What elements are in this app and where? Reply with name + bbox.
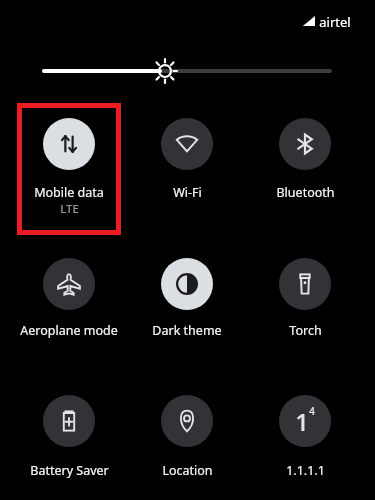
staticText: Location — [162, 462, 213, 479]
other: Wi-Fi — [161, 118, 213, 170]
other: Torch — [279, 258, 331, 310]
staticText: Torch — [289, 322, 322, 339]
staticText: Aeroplane mode — [20, 322, 118, 339]
other: Aeroplane mode — [43, 258, 95, 310]
other: Mobile data — [43, 118, 95, 170]
button[interactable] — [129, 112, 245, 208]
staticText: 1 — [295, 405, 309, 438]
button[interactable] — [247, 252, 363, 346]
other: Dark theme — [161, 258, 213, 310]
button[interactable] — [129, 252, 245, 346]
staticText: Wi-Fi — [173, 184, 202, 201]
staticText: Dark theme — [152, 322, 222, 339]
button[interactable] — [247, 389, 363, 484]
staticText: LTE — [60, 201, 79, 217]
staticText: 4 — [309, 404, 315, 418]
staticText: Bluetooth — [276, 184, 335, 201]
staticText: Mobile data — [34, 184, 104, 201]
other: 1.1.1.1 — [279, 395, 331, 447]
staticText: airtel — [319, 13, 351, 31]
button[interactable] — [11, 252, 127, 346]
other: Battery Saver — [43, 395, 95, 447]
button[interactable]: Brightness — [30, 56, 345, 86]
staticText: Battery Saver — [30, 462, 109, 479]
other: Location — [161, 395, 213, 447]
button[interactable] — [129, 389, 245, 486]
button[interactable] — [11, 389, 127, 486]
staticText: 1.1.1.1 — [286, 462, 325, 479]
button[interactable] — [247, 112, 363, 208]
button[interactable] — [11, 112, 127, 208]
other: Bluetooth — [279, 118, 331, 170]
